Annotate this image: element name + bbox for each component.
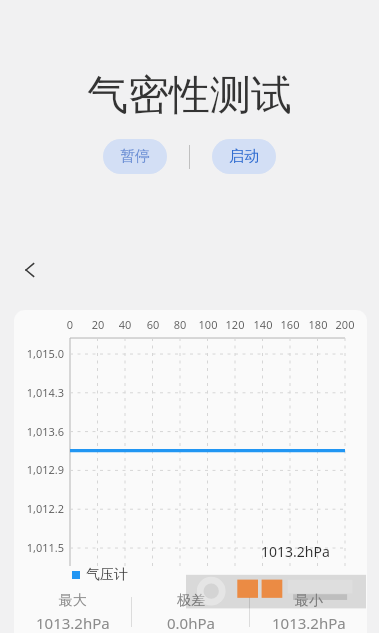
staticText: 1013.2hPa [261, 542, 330, 561]
staticText: 120 [218, 317, 252, 332]
staticText: 40 [108, 317, 142, 332]
button[interactable]: 启动 [212, 139, 276, 174]
staticText: 60 [136, 317, 170, 332]
staticText: 100 [191, 317, 225, 332]
staticText: 0 [53, 317, 87, 332]
button[interactable]: Back [8, 248, 52, 292]
staticText: 1,014.3 [14, 385, 64, 400]
staticText: 200 [328, 317, 362, 332]
staticText: 1,012.9 [14, 462, 64, 477]
staticText: 气密性测试 [0, 70, 379, 122]
staticText: 1013.2hPa [272, 613, 346, 633]
staticText: 1,013.6 [14, 424, 64, 439]
staticText: 启动 [229, 147, 259, 166]
staticText: 140 [246, 317, 280, 332]
staticText: 极差 [177, 592, 205, 610]
button[interactable]: 暂停 [103, 139, 167, 174]
staticText: 0.0hPa [167, 613, 215, 633]
staticText: 1013.2hPa [36, 613, 110, 633]
staticText: 1,015.0 [14, 346, 64, 361]
staticText: 1,011.5 [14, 540, 64, 555]
staticText: 80 [163, 317, 197, 332]
staticText: 20 [81, 317, 115, 332]
staticText: 暂停 [120, 147, 150, 166]
staticText: 1,012.2 [14, 501, 64, 516]
staticText: 最大 [59, 592, 87, 610]
staticText: 气压计 [86, 566, 128, 584]
staticText: 最小 [295, 592, 323, 610]
staticText: 180 [301, 317, 335, 332]
staticText: 160 [273, 317, 307, 332]
